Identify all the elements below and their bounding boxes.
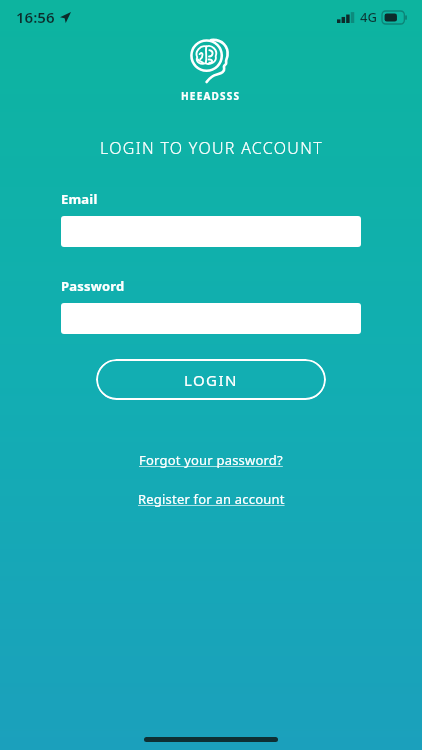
staticText: LOGIN [184, 370, 238, 390]
button[interactable] [61, 303, 361, 334]
staticText: Email [61, 190, 98, 208]
staticText: 16:56 [16, 7, 55, 27]
button[interactable]: LOGIN [96, 359, 326, 400]
staticText: LOGIN TO YOUR ACCOUNT [100, 137, 323, 159]
button[interactable] [61, 216, 361, 247]
button[interactable]: Forgot your password? [137, 450, 285, 470]
staticText: Forgot your password? [139, 451, 283, 469]
staticText: HEEADSSS [181, 89, 241, 103]
staticText: 4G [360, 8, 377, 26]
staticText: Password [61, 277, 125, 295]
staticText: Register for an account [138, 490, 285, 508]
button[interactable]: Register for an account [136, 489, 287, 509]
